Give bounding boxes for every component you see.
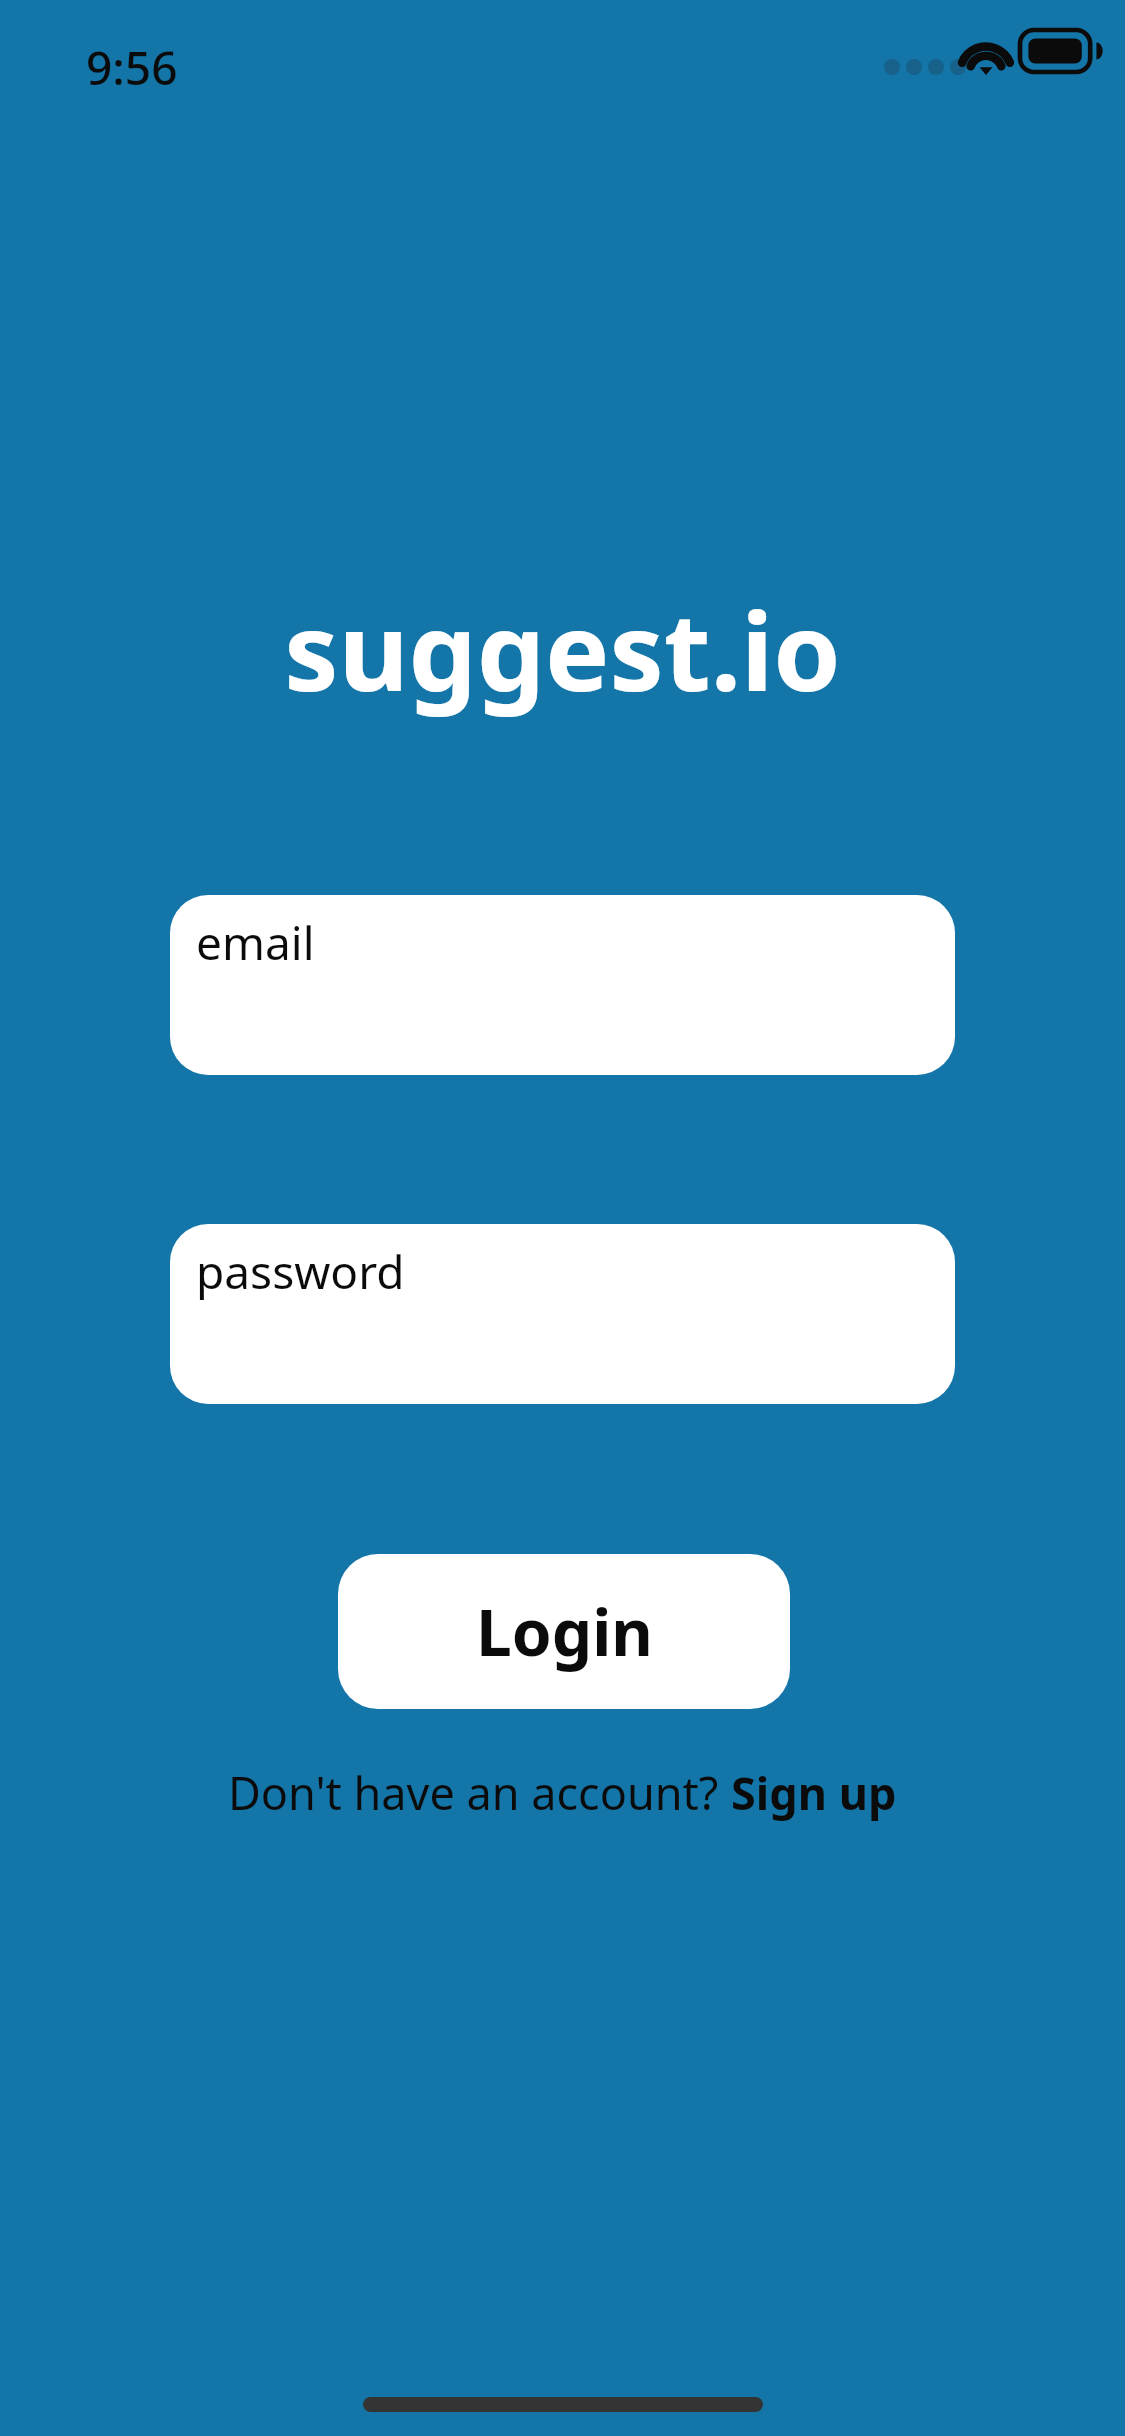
button[interactable]: password [170,1224,955,1404]
staticText: suggest.io [0,576,1125,723]
staticText: Login [476,1588,653,1675]
staticText: Sign up [731,1762,897,1823]
staticText: email [196,911,315,974]
staticText: Don't have an account? [228,1762,731,1823]
button[interactable]: email [170,895,955,1075]
button[interactable]: Login [338,1554,790,1709]
button[interactable]: Sign up [731,1762,897,1823]
staticText: 9:56 [86,36,178,99]
staticText: password [196,1240,405,1303]
